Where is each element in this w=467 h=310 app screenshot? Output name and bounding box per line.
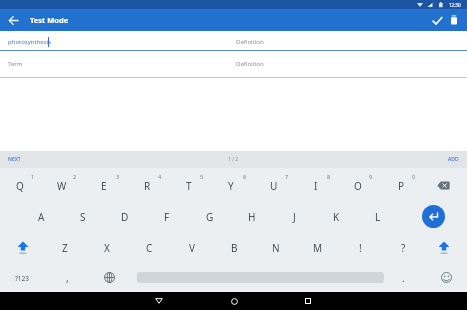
button[interactable] [296,292,320,310]
button[interactable]: C [128,233,170,263]
staticText: H [248,210,256,224]
staticText: 3 [116,173,120,180]
staticText: 2 [73,173,77,180]
staticText: U [270,179,278,193]
staticText: A [38,210,45,224]
button[interactable]: X [86,233,128,263]
staticText: 5 [200,173,204,180]
staticText: . [402,271,405,285]
button[interactable]: V [171,233,213,263]
staticText: Z [62,241,68,255]
staticText: Test Mode [30,15,69,25]
staticText: E [101,179,107,193]
button[interactable]: G [189,202,231,232]
button[interactable]: NEXT [0,151,60,168]
staticText: F [164,210,170,224]
button[interactable] [428,11,446,29]
button[interactable]: A [20,202,62,232]
staticText: 1 [31,173,35,180]
button[interactable] [423,232,465,262]
button[interactable] [4,11,22,29]
button[interactable] [147,292,171,310]
button[interactable]: Y [210,171,252,201]
staticText: ADD [448,156,459,163]
button[interactable] [2,232,44,262]
staticText: Q [16,179,24,193]
staticText: 12:30 [449,2,461,8]
staticText: NEXT [8,156,21,163]
button[interactable]: J [273,202,315,232]
staticText: K [333,210,340,224]
button[interactable]: ! [339,233,381,263]
staticText: N [272,241,280,255]
staticText: L [375,210,381,224]
staticText: 7 [285,173,289,180]
staticText: ? [401,241,406,255]
staticText: ! [359,241,362,255]
staticText: D [121,210,129,224]
button[interactable]: I [295,171,337,201]
staticText: M [313,241,323,255]
staticText: Definition [236,60,264,68]
button[interactable]: P [380,171,422,201]
button[interactable]: S [62,202,104,232]
staticText: O [354,179,362,193]
button[interactable]: Z [44,233,86,263]
staticText: 9 [369,173,373,180]
button[interactable]: L [357,202,399,232]
staticText: photosynthesis [8,38,52,46]
staticText: Term [8,60,23,68]
button[interactable]: Q [0,171,41,201]
button[interactable]: U [253,171,295,201]
button[interactable]: W [41,171,83,201]
button[interactable]: ? [382,233,424,263]
button[interactable]: K [315,202,357,232]
button[interactable]: O [337,171,379,201]
staticText: 1 / 2 [228,156,239,163]
staticText: 4 [158,173,162,180]
button[interactable]: D [104,202,146,232]
staticText: W [57,179,67,193]
staticText: 6 [243,173,247,180]
button[interactable]: , [52,263,82,293]
button[interactable]: E [83,171,125,201]
button[interactable]: B [213,233,255,263]
staticText: G [206,210,214,224]
button[interactable] [422,205,445,228]
button[interactable]: ?123 [0,263,44,293]
staticText: 8 [327,173,331,180]
button[interactable]: R [126,171,168,201]
staticText: ?123 [15,274,29,283]
staticText: 0 [412,173,416,180]
button[interactable]: M [297,233,339,263]
button[interactable] [445,11,463,29]
button[interactable] [422,170,464,200]
button[interactable] [431,262,461,292]
button[interactable]: . [388,263,418,293]
staticText: I [314,179,318,193]
button[interactable] [222,292,246,310]
staticText: S [80,210,86,224]
staticText: R [144,179,151,193]
button[interactable]: N [255,233,297,263]
staticText: V [189,241,195,255]
button[interactable] [94,262,124,292]
staticText: B [231,241,238,255]
staticText: Y [228,179,234,193]
staticText: , [66,271,69,285]
button[interactable]: H [231,202,273,232]
button[interactable]: F [146,202,188,232]
button[interactable]: ADD [407,151,467,168]
staticText: J [293,210,296,224]
button[interactable]: T [168,171,210,201]
staticText: X [104,241,110,255]
staticText: Definition [236,38,264,46]
staticText: P [398,179,405,193]
staticText: T [186,179,192,193]
staticText: C [146,241,153,255]
